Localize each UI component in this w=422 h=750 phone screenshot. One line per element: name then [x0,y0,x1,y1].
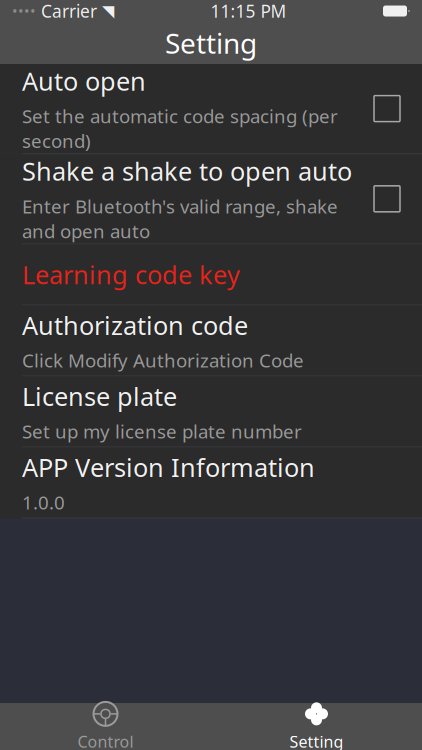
staticText: Set the automatic code spacing (per seco… [22,104,338,153]
staticText: Shake a shake to open auto [22,154,352,188]
staticText: APP Version Information [22,450,315,484]
staticText: ◥ [102,2,114,20]
staticText: Carrier [41,0,97,22]
staticText: Set up my license plate number [22,419,302,444]
staticText: License plate [22,379,177,413]
button[interactable]: Control [0,701,211,750]
staticText: Enter Bluetooth's valid range, shake and… [22,194,338,243]
staticText: Setting [289,731,343,750]
staticText: Control [77,731,133,750]
staticText: Authorization code [22,308,248,342]
button[interactable]: Shake a shake to open auto [0,154,422,243]
staticText: 11:15 PM [210,0,286,22]
staticText: Auto open [22,64,146,98]
button[interactable]: Setting [211,701,422,750]
button[interactable]: Auto open [0,64,422,153]
staticText: Click Modify Authorization Code [22,348,304,373]
button[interactable]: Learning code key [0,244,422,304]
staticText: 1.0.0 [22,490,65,515]
button[interactable]: License plate [0,376,422,446]
button[interactable]: Authorization code [0,305,422,375]
staticText: •••• [12,1,36,21]
staticText: Setting [165,24,257,62]
button[interactable]: APP Version Information [0,447,422,517]
staticText: Learning code key [22,258,240,291]
